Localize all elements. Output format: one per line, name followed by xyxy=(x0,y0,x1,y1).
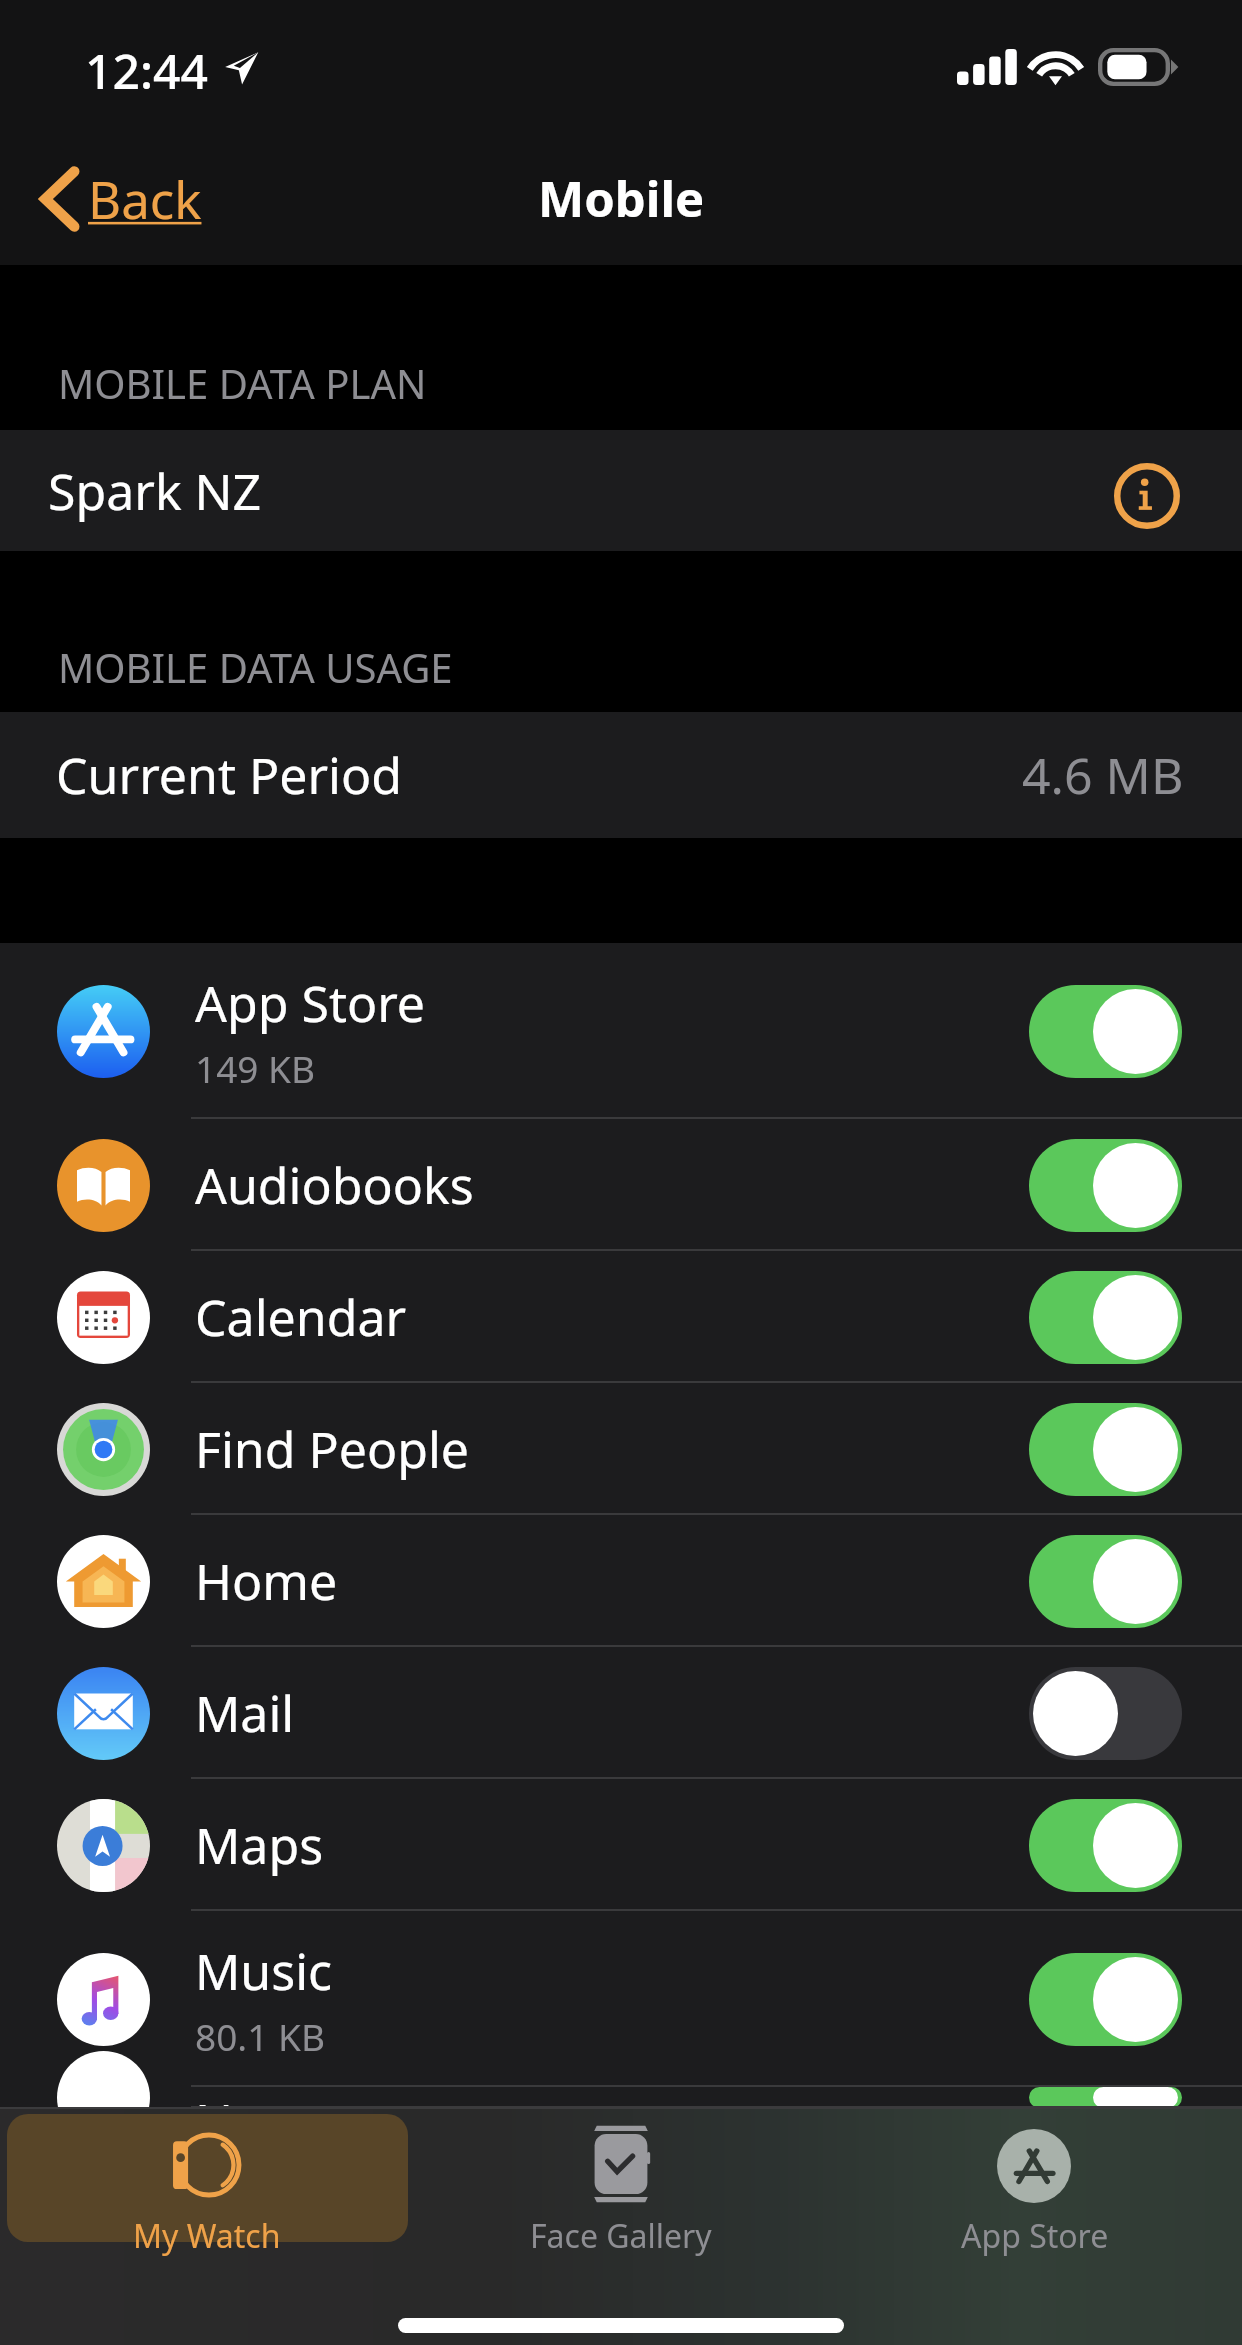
button[interactable]: Home xyxy=(0,1515,1242,1647)
staticText: Back xyxy=(88,164,202,233)
button[interactable]: App Store tab xyxy=(828,2107,1242,2257)
staticText: Find People xyxy=(195,1415,470,1483)
staticText: Audiobooks xyxy=(195,1151,474,1219)
button[interactable]: Music xyxy=(0,1911,1242,2087)
button[interactable]: Mail xyxy=(0,1647,1242,1779)
staticText: Face Gallery xyxy=(530,2214,712,2258)
staticText: Mail xyxy=(195,1679,295,1747)
staticText: MOBILE DATA PLAN xyxy=(58,356,427,410)
button[interactable]: Enabled xyxy=(1029,1139,1182,1232)
staticText: My Watch xyxy=(133,2214,281,2258)
button[interactable]: Enabled xyxy=(1029,985,1182,1078)
button[interactable]: Maps xyxy=(0,1779,1242,1911)
staticText: Spark NZ xyxy=(48,457,262,525)
staticText: News xyxy=(195,2087,324,2108)
staticText: Current Period xyxy=(56,741,402,809)
button[interactable]: Current Period xyxy=(0,712,1242,838)
button[interactable]: Spark NZ xyxy=(0,430,1242,551)
staticText: 4.6 MB xyxy=(1022,741,1184,809)
staticText: Maps xyxy=(195,1811,324,1879)
button[interactable]: Find People xyxy=(0,1383,1242,1515)
staticText: 12:44 xyxy=(85,38,208,103)
button[interactable]: Enabled xyxy=(1029,1271,1182,1364)
button[interactable]: App Store xyxy=(0,943,1242,1119)
staticText: Music xyxy=(195,1937,333,2005)
button[interactable]: Back xyxy=(0,156,214,241)
button[interactable]: Enabled xyxy=(1029,1403,1182,1496)
button[interactable]: Enabled xyxy=(1029,2087,1182,2108)
staticText: Home xyxy=(195,1547,338,1615)
staticText: Calendar xyxy=(195,1283,407,1351)
button[interactable]: Calendar xyxy=(0,1251,1242,1383)
button[interactable]: Audiobooks xyxy=(0,1119,1242,1251)
button[interactable]: Plan information xyxy=(1114,463,1180,529)
staticText: App Store xyxy=(961,2214,1109,2258)
button[interactable]: Disabled xyxy=(1029,1667,1182,1760)
staticText: Mobile xyxy=(538,165,705,232)
button[interactable]: Enabled xyxy=(1029,1535,1182,1628)
button[interactable]: Enabled xyxy=(1029,1953,1182,2046)
button[interactable]: My Watch tab xyxy=(0,2107,414,2257)
staticText: MOBILE DATA USAGE xyxy=(58,640,453,694)
button[interactable]: Face Gallery tab xyxy=(414,2107,828,2257)
button[interactable]: Enabled xyxy=(1029,1799,1182,1892)
button[interactable]: News xyxy=(0,2087,1242,2108)
staticText: 149 KB xyxy=(195,1043,316,1093)
staticText: App Store xyxy=(195,969,426,1037)
staticText: 80.1 KB xyxy=(195,2011,325,2061)
